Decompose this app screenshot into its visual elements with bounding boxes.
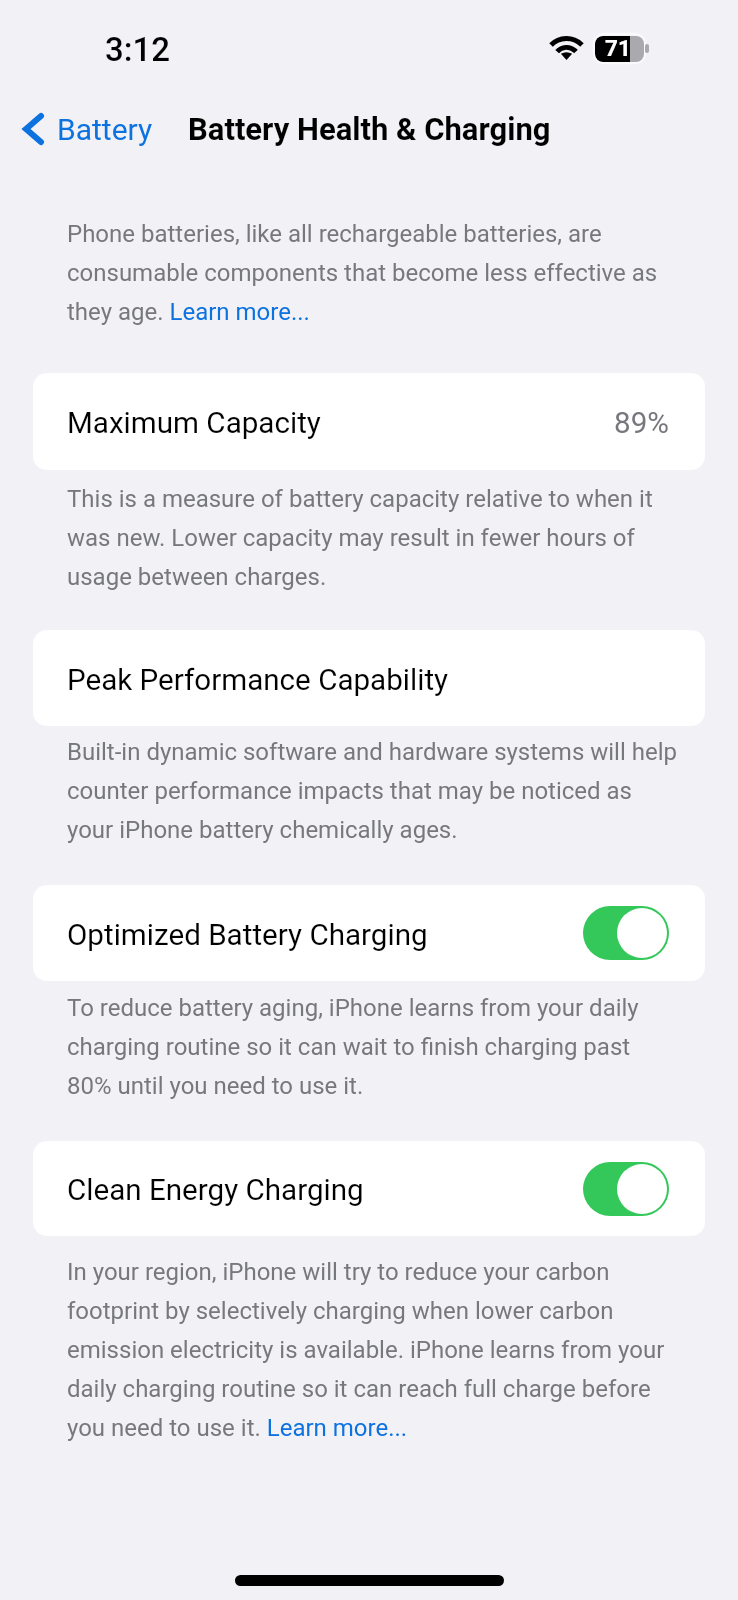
- button[interactable]: Peak Performance Capability: [33, 630, 705, 726]
- button[interactable]: Learn more: [266, 1416, 408, 1450]
- button[interactable]: Optimized Battery Charging: [583, 906, 669, 960]
- button[interactable]: Learn more: [169, 300, 311, 334]
- staticText: 89%: [614, 406, 669, 441]
- other: Battery 71 percent: [594, 34, 650, 64]
- other: Wi-Fi: [549, 32, 584, 61]
- staticText: This is a measure of battery capacity re…: [67, 485, 679, 591]
- staticText: Phone batteries, like all rechargeable b…: [67, 220, 679, 326]
- staticText: Optimized Battery Charging: [67, 918, 428, 953]
- staticText: To reduce battery aging, iPhone learns f…: [67, 994, 679, 1100]
- staticText: Built-in dynamic software and hardware s…: [67, 738, 679, 844]
- staticText: Peak Performance Capability: [67, 663, 449, 698]
- staticText: 71: [605, 36, 631, 61]
- staticText: 3:12: [105, 30, 171, 69]
- button[interactable]: Battery: [0, 103, 169, 155]
- staticText: Maximum Capacity: [67, 406, 321, 441]
- staticText: Battery Health & Charging: [188, 111, 551, 147]
- staticText: In your region, iPhone will try to reduc…: [67, 1258, 679, 1442]
- staticText: Clean Energy Charging: [67, 1173, 364, 1208]
- button[interactable]: Clean Energy Charging: [33, 1141, 705, 1236]
- button[interactable]: Optimized Battery Charging: [33, 885, 705, 981]
- button[interactable]: Maximum Capacity: [33, 373, 705, 470]
- button[interactable]: Clean Energy Charging: [583, 1162, 669, 1216]
- staticText: Battery: [57, 112, 153, 147]
